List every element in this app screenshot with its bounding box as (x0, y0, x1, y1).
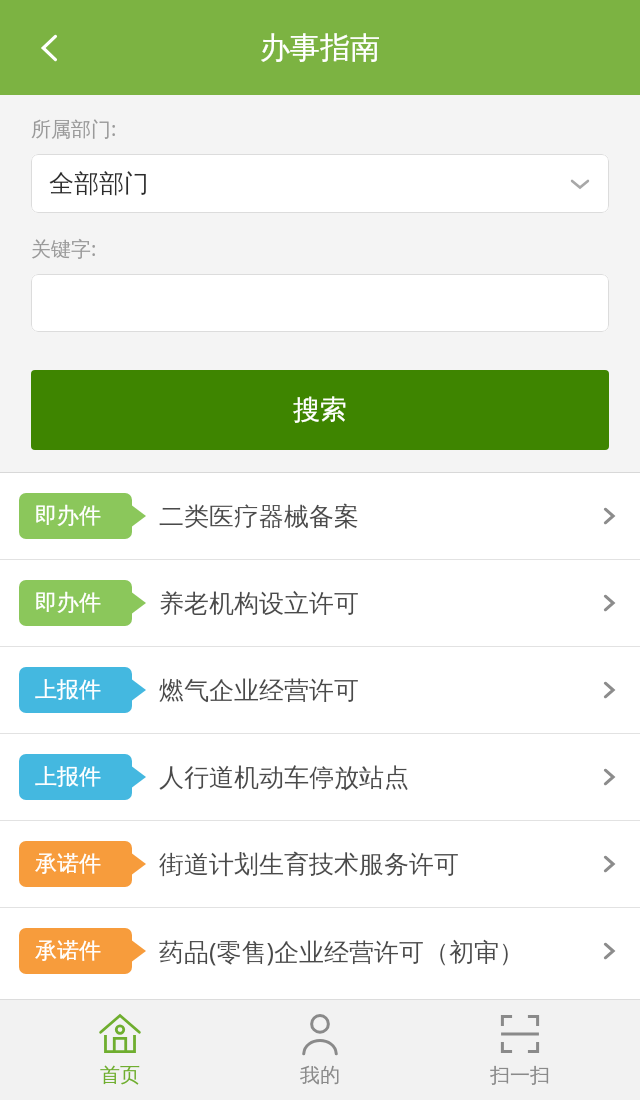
button[interactable]: 即办件 (0, 560, 640, 646)
staticText: 燃气企业经营许可 (159, 675, 596, 706)
button[interactable]: 承诺件 (0, 908, 640, 994)
button[interactable] (31, 274, 609, 332)
staticText: 承诺件 (35, 850, 101, 878)
button[interactable]: 上报件 (0, 734, 640, 820)
staticText: 街道计划生育技术服务许可 (159, 849, 596, 880)
button[interactable]: 首页 (40, 1012, 200, 1088)
staticText: 即办件 (35, 589, 101, 617)
button[interactable]: 即办件 (0, 473, 640, 559)
staticText: 药品(零售)企业经营许可（初审） (159, 934, 596, 968)
button[interactable]: Back (14, 12, 86, 84)
staticText: 人行道机动车停放站点 (159, 762, 596, 793)
button[interactable]: 我的 (240, 1012, 400, 1088)
button[interactable]: 承诺件 (0, 821, 640, 907)
button[interactable]: 搜索 (31, 370, 609, 450)
staticText: 首页 (100, 1063, 140, 1088)
staticText: 我的 (300, 1063, 340, 1088)
staticText: 搜索 (293, 393, 347, 427)
staticText: 关键字: (31, 235, 97, 262)
button[interactable]: 扫一扫 (440, 1012, 600, 1088)
staticText: 全部部门 (49, 168, 149, 199)
staticText: 办事指南 (260, 29, 380, 67)
staticText: 即办件 (35, 502, 101, 530)
staticText: 养老机构设立许可 (159, 588, 596, 619)
staticText: 二类医疗器械备案 (159, 501, 596, 532)
staticText: 扫一扫 (490, 1063, 550, 1088)
staticText: 上报件 (35, 676, 101, 704)
button[interactable]: 全部部门 (31, 154, 609, 213)
staticText: 所属部门: (31, 115, 117, 142)
staticText: 承诺件 (35, 937, 101, 965)
button[interactable]: 上报件 (0, 647, 640, 733)
staticText: 上报件 (35, 763, 101, 791)
